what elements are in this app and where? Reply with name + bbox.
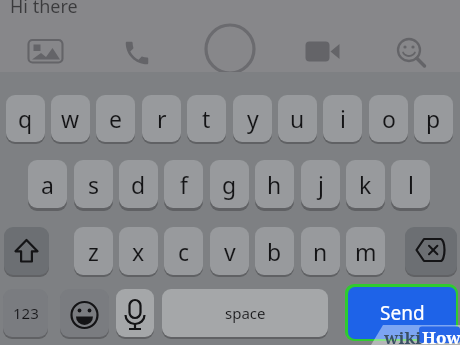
button[interactable]	[405, 227, 457, 275]
button[interactable]: p	[414, 95, 453, 142]
staticText: k	[359, 169, 372, 200]
staticText: 123	[13, 303, 39, 323]
button[interactable]: a	[28, 160, 67, 208]
button[interactable]: space	[162, 289, 328, 337]
button[interactable]: w	[51, 95, 90, 142]
staticText: wiki	[384, 326, 422, 345]
button[interactable]: h	[255, 160, 294, 208]
staticText: Hi there	[10, 0, 78, 19]
button[interactable]: l	[391, 160, 430, 208]
button[interactable]: t	[187, 95, 226, 142]
button[interactable]: x	[119, 227, 158, 275]
staticText: m	[355, 236, 377, 267]
staticText: c	[178, 236, 190, 267]
button[interactable]: o	[369, 95, 408, 142]
staticText: x	[132, 236, 145, 267]
staticText: v	[224, 236, 236, 267]
button[interactable]	[118, 34, 156, 66]
button[interactable]	[60, 289, 109, 337]
staticText: i	[340, 103, 346, 134]
staticText: j	[318, 169, 324, 200]
staticText: u	[290, 103, 305, 134]
staticText: r	[157, 103, 167, 134]
button[interactable]: k	[346, 160, 385, 208]
button[interactable]	[300, 36, 344, 66]
button[interactable]: r	[142, 95, 181, 142]
button[interactable]: d	[119, 160, 158, 208]
button[interactable]: c	[164, 227, 203, 275]
staticText: e	[109, 103, 122, 134]
staticText: z	[88, 236, 99, 267]
staticText: g	[222, 169, 237, 200]
staticText: o	[382, 103, 396, 134]
staticText: How	[422, 326, 460, 345]
button[interactable]: Send	[348, 287, 456, 339]
button[interactable]: e	[96, 95, 135, 142]
button[interactable]: y	[233, 95, 272, 142]
staticText: w	[61, 103, 80, 134]
button[interactable]: m	[346, 227, 385, 275]
button[interactable]	[24, 34, 68, 66]
staticText: y	[247, 103, 259, 134]
staticText: t	[202, 103, 211, 134]
button[interactable]	[394, 36, 434, 70]
button[interactable]: b	[255, 227, 294, 275]
button[interactable]: s	[74, 160, 113, 208]
staticText: l	[408, 169, 414, 200]
button[interactable]: g	[210, 160, 249, 208]
staticText: s	[88, 169, 100, 200]
staticText: p	[426, 103, 441, 134]
staticText: n	[313, 236, 328, 267]
staticText: q	[18, 103, 33, 134]
button[interactable]: v	[210, 227, 249, 275]
button[interactable]: n	[301, 227, 340, 275]
button[interactable]: i	[323, 95, 362, 142]
staticText: b	[267, 236, 282, 267]
button[interactable]: u	[278, 95, 317, 142]
button[interactable]: 123	[3, 289, 48, 337]
button[interactable]: z	[74, 227, 113, 275]
staticText: Send	[380, 300, 425, 326]
button[interactable]	[116, 289, 154, 337]
button[interactable]: j	[301, 160, 340, 208]
staticText: space	[225, 303, 266, 323]
staticText: f	[180, 169, 188, 200]
button[interactable]: f	[164, 160, 203, 208]
staticText: h	[267, 169, 282, 200]
staticText: d	[131, 169, 146, 200]
button[interactable]	[203, 22, 257, 76]
button[interactable]	[4, 227, 49, 275]
button[interactable]: q	[6, 95, 45, 142]
staticText: a	[41, 169, 54, 200]
